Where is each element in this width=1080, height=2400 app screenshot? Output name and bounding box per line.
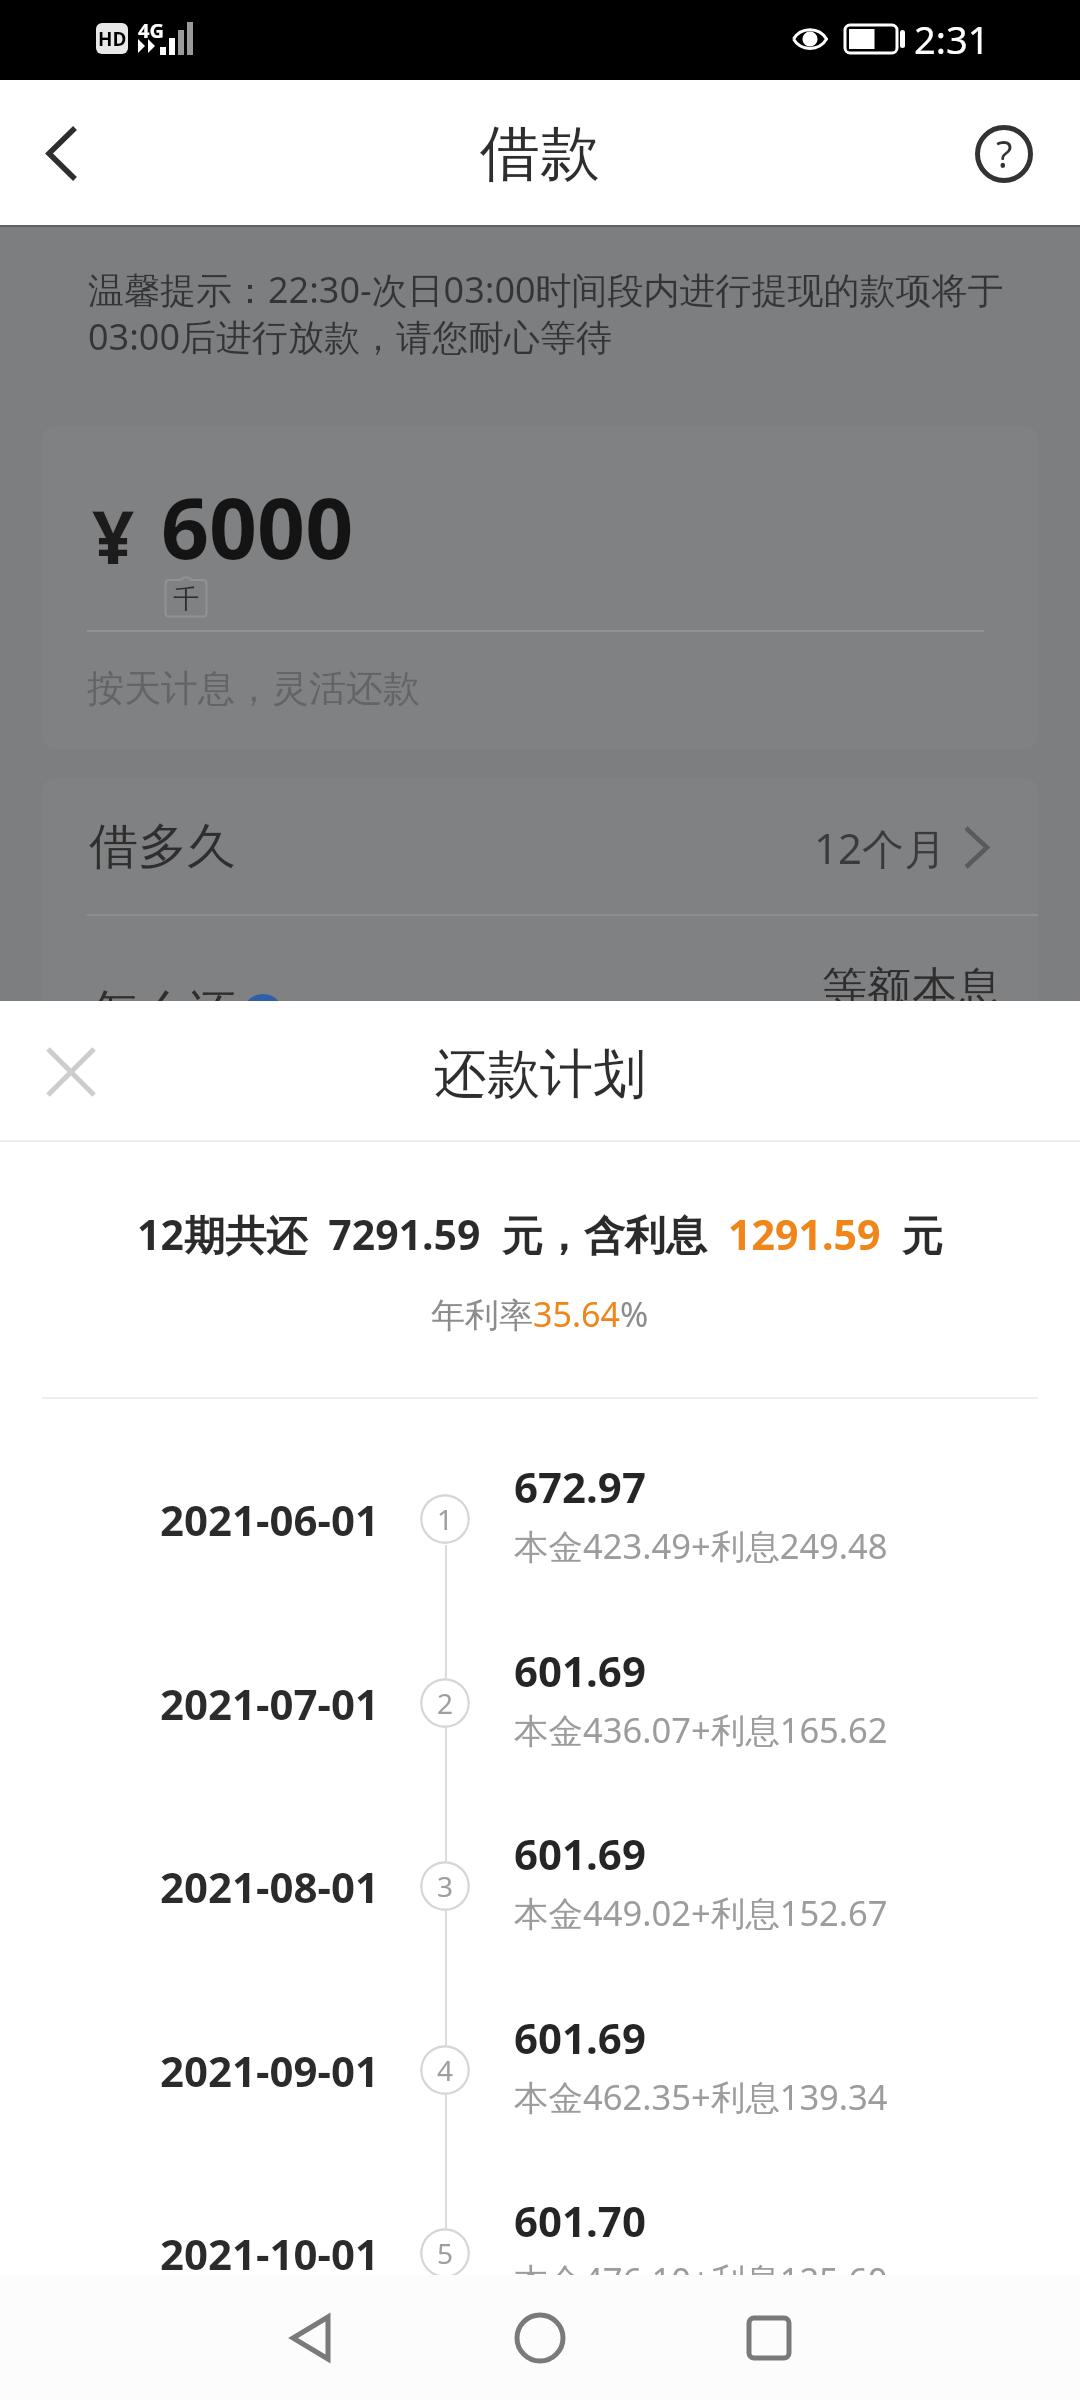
staticText: 2021-07-01 (160, 1675, 380, 1732)
staticText: 本金449.02+利息152.67 (514, 1889, 888, 1936)
staticText: 2021-06-01 (160, 1491, 380, 1548)
staticText: 3 (437, 1867, 454, 1905)
button[interactable]: Back (232, 2275, 382, 2400)
button[interactable]: 2021-09-01 (0, 1978, 1080, 2161)
staticText: 借款 (480, 116, 600, 192)
staticText: 2:31 (914, 13, 990, 65)
button[interactable]: 2021-08-01 (0, 1794, 1080, 1977)
staticText: 本金476.10+利息125.60 (514, 2256, 888, 2303)
button[interactable]: 2021-06-01 (0, 1427, 1080, 1610)
staticText: 本金462.35+利息139.34 (514, 2073, 888, 2120)
staticText: 本金423.49+利息249.48 (514, 1522, 888, 1569)
button[interactable]: Recents (694, 2275, 844, 2400)
staticText: 还款计划 (434, 1041, 646, 1108)
button[interactable]: Home (465, 2275, 615, 2400)
staticText: 2021-10-01 (160, 2225, 380, 2282)
staticText: 5 (437, 2234, 454, 2272)
staticText: ¥ (92, 485, 135, 586)
button[interactable]: ¥ (42, 426, 1038, 749)
staticText: ? (996, 127, 1013, 179)
button[interactable]: 2021-07-01 (0, 1611, 1080, 1794)
staticText: 借多久 (89, 816, 236, 878)
staticText: 672.97 (514, 1458, 646, 1515)
button[interactable] (42, 778, 1038, 914)
staticText: 1 (437, 1500, 454, 1538)
staticText: 12个月 (814, 819, 947, 876)
staticText: 12期共还 7291.59 元，含利息 1291.59 元 (137, 1206, 943, 1262)
button[interactable]: 2021-10-01 (0, 2161, 1080, 2344)
staticText: 2021-09-01 (160, 2042, 380, 2099)
button[interactable]: Help (960, 80, 1080, 227)
staticText: 4 (437, 2051, 454, 2089)
staticText: 601.70 (514, 2192, 646, 2249)
staticText: 2021-08-01 (160, 1858, 380, 1915)
staticText: 千 (173, 583, 199, 616)
button[interactable]: Close (24, 1025, 118, 1119)
staticText: 6000 (161, 469, 354, 583)
staticText: 601.69 (514, 1825, 646, 1882)
button[interactable] (42, 916, 1038, 1028)
staticText: 601.69 (514, 1642, 646, 1699)
staticText: 等额本息 (822, 961, 1002, 1018)
staticText: 4G (138, 17, 164, 44)
staticText: 本金436.07+利息165.62 (514, 1706, 888, 1753)
staticText: 怎么还 (89, 983, 236, 1028)
staticText: 601.69 (514, 2009, 646, 2066)
staticText: 温馨提示：22:30-次日03:00时间段内进行提现的款项将于 03:00后进行… (88, 265, 1004, 360)
staticText: HD (98, 26, 127, 52)
button[interactable]: Back (0, 80, 118, 227)
staticText: 按天计息，灵活还款 (87, 665, 420, 712)
staticText: 年利率35.64% (431, 1291, 649, 1337)
staticText: 2 (437, 1684, 454, 1722)
